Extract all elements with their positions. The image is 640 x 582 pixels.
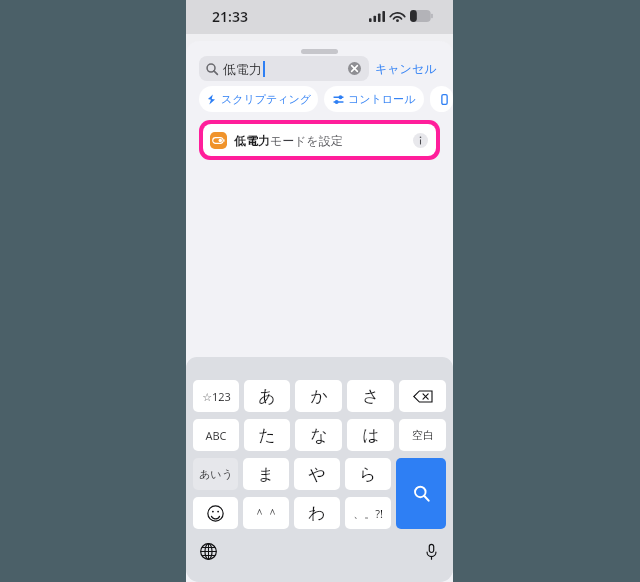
staticText: ら [359,464,377,485]
staticText: わ [308,503,326,524]
staticText: な [310,425,328,446]
button[interactable]: キャンセル [369,57,443,80]
staticText: コントロール [348,92,416,106]
button[interactable]: ま [243,458,289,490]
button[interactable]: ABC [193,419,239,451]
staticText: 、。?! [353,506,383,521]
button[interactable]: や [294,458,340,490]
staticText: は [362,425,380,446]
staticText: ABC [205,428,227,443]
staticText: 21:33 [212,7,248,26]
button[interactable]: Emoji [193,497,238,529]
button[interactable]: Search [396,458,446,529]
button[interactable]: な [295,419,342,451]
button[interactable]: デ [430,86,453,112]
button[interactable]: Clear text [347,61,362,76]
staticText: ＾＾ [253,505,279,521]
button[interactable]: 低電力 [199,56,369,81]
button[interactable]: さ [347,380,394,412]
button[interactable]: わ [294,497,340,529]
button[interactable]: 空白 [399,419,446,451]
staticText: あいう [199,467,233,481]
button[interactable]: は [347,419,394,451]
button[interactable]: た [244,419,290,451]
staticText: た [258,425,276,446]
button[interactable]: か [295,380,342,412]
button[interactable]: Delete [399,380,446,412]
staticText: 空白 [412,428,434,442]
staticText: か [310,386,328,407]
button[interactable]: Switch keyboard [193,536,223,566]
button[interactable]: 、。?! [345,497,391,529]
staticText: モードを設定 [270,133,343,148]
staticText: ☆123 [202,389,231,404]
staticText: ま [257,464,275,485]
button[interactable]: ☆123 [193,380,239,412]
button[interactable]: あ [244,380,290,412]
staticText: スクリプティング [221,92,312,106]
staticText: さ [362,386,380,407]
button[interactable]: コントロール [324,86,424,112]
staticText: あ [258,386,276,407]
button[interactable]: Info [411,131,429,149]
button[interactable]: ＾＾ [243,497,289,529]
staticText: 低電力 [223,61,262,77]
button[interactable]: 低電力 [199,120,440,160]
staticText: 低電力 [234,133,270,148]
staticText: キャンセル [375,61,437,76]
button[interactable]: Dictation [416,536,446,566]
staticText: や [308,464,326,485]
button[interactable]: あいう [193,458,238,490]
button[interactable]: ら [345,458,391,490]
button[interactable]: スクリプティング [199,86,318,112]
